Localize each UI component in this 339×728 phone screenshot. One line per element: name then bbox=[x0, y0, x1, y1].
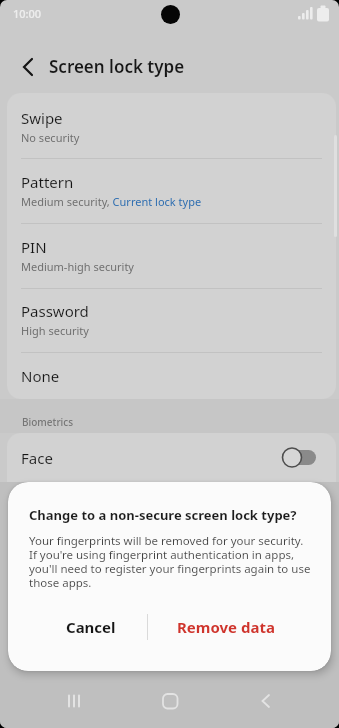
button[interactable] bbox=[7, 433, 336, 482]
button[interactable] bbox=[7, 288, 336, 352]
staticText: Password bbox=[21, 301, 89, 321]
staticText: PIN bbox=[21, 237, 47, 257]
staticText: Screen lock type bbox=[49, 55, 185, 78]
button[interactable] bbox=[7, 223, 336, 288]
staticText: None bbox=[21, 366, 60, 386]
button[interactable] bbox=[7, 93, 336, 158]
staticText: Biometrics bbox=[22, 415, 74, 429]
staticText: High security bbox=[21, 323, 89, 338]
staticText: Change to a non-secure screen lock type? bbox=[29, 506, 297, 524]
button[interactable] bbox=[12, 52, 42, 82]
staticText: Cancel bbox=[66, 617, 116, 637]
button[interactable] bbox=[54, 681, 94, 721]
button[interactable] bbox=[150, 681, 190, 721]
staticText: Swipe bbox=[21, 108, 63, 128]
staticText: Medium security, Current lock type bbox=[21, 194, 202, 209]
staticText: Pattern bbox=[21, 172, 74, 192]
button[interactable] bbox=[7, 352, 336, 399]
staticText: 10:00 bbox=[13, 6, 42, 21]
staticText: Face bbox=[21, 448, 53, 468]
button[interactable]: Remove data bbox=[166, 609, 286, 645]
staticText: No security bbox=[21, 130, 80, 145]
staticText: Remove data bbox=[177, 617, 275, 637]
staticText: Medium-high security bbox=[21, 259, 134, 274]
button[interactable] bbox=[245, 681, 285, 721]
button[interactable] bbox=[7, 159, 336, 223]
button[interactable]: Cancel bbox=[31, 609, 151, 645]
staticText: Your fingerprints will be removed for yo… bbox=[29, 533, 311, 591]
